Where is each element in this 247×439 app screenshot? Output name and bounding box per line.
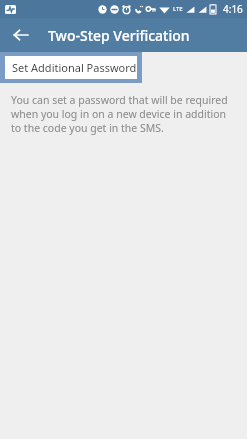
button[interactable]: Set Additional Password bbox=[0, 52, 142, 83]
staticText: Two-Step Verification bbox=[48, 26, 190, 45]
staticText: Set Additional Password bbox=[12, 60, 137, 75]
staticText: LTE bbox=[173, 5, 183, 13]
staticText: 4:16 bbox=[223, 2, 243, 16]
button[interactable]: Back bbox=[8, 22, 34, 48]
staticText: You can set a password that will be requ… bbox=[11, 93, 233, 135]
